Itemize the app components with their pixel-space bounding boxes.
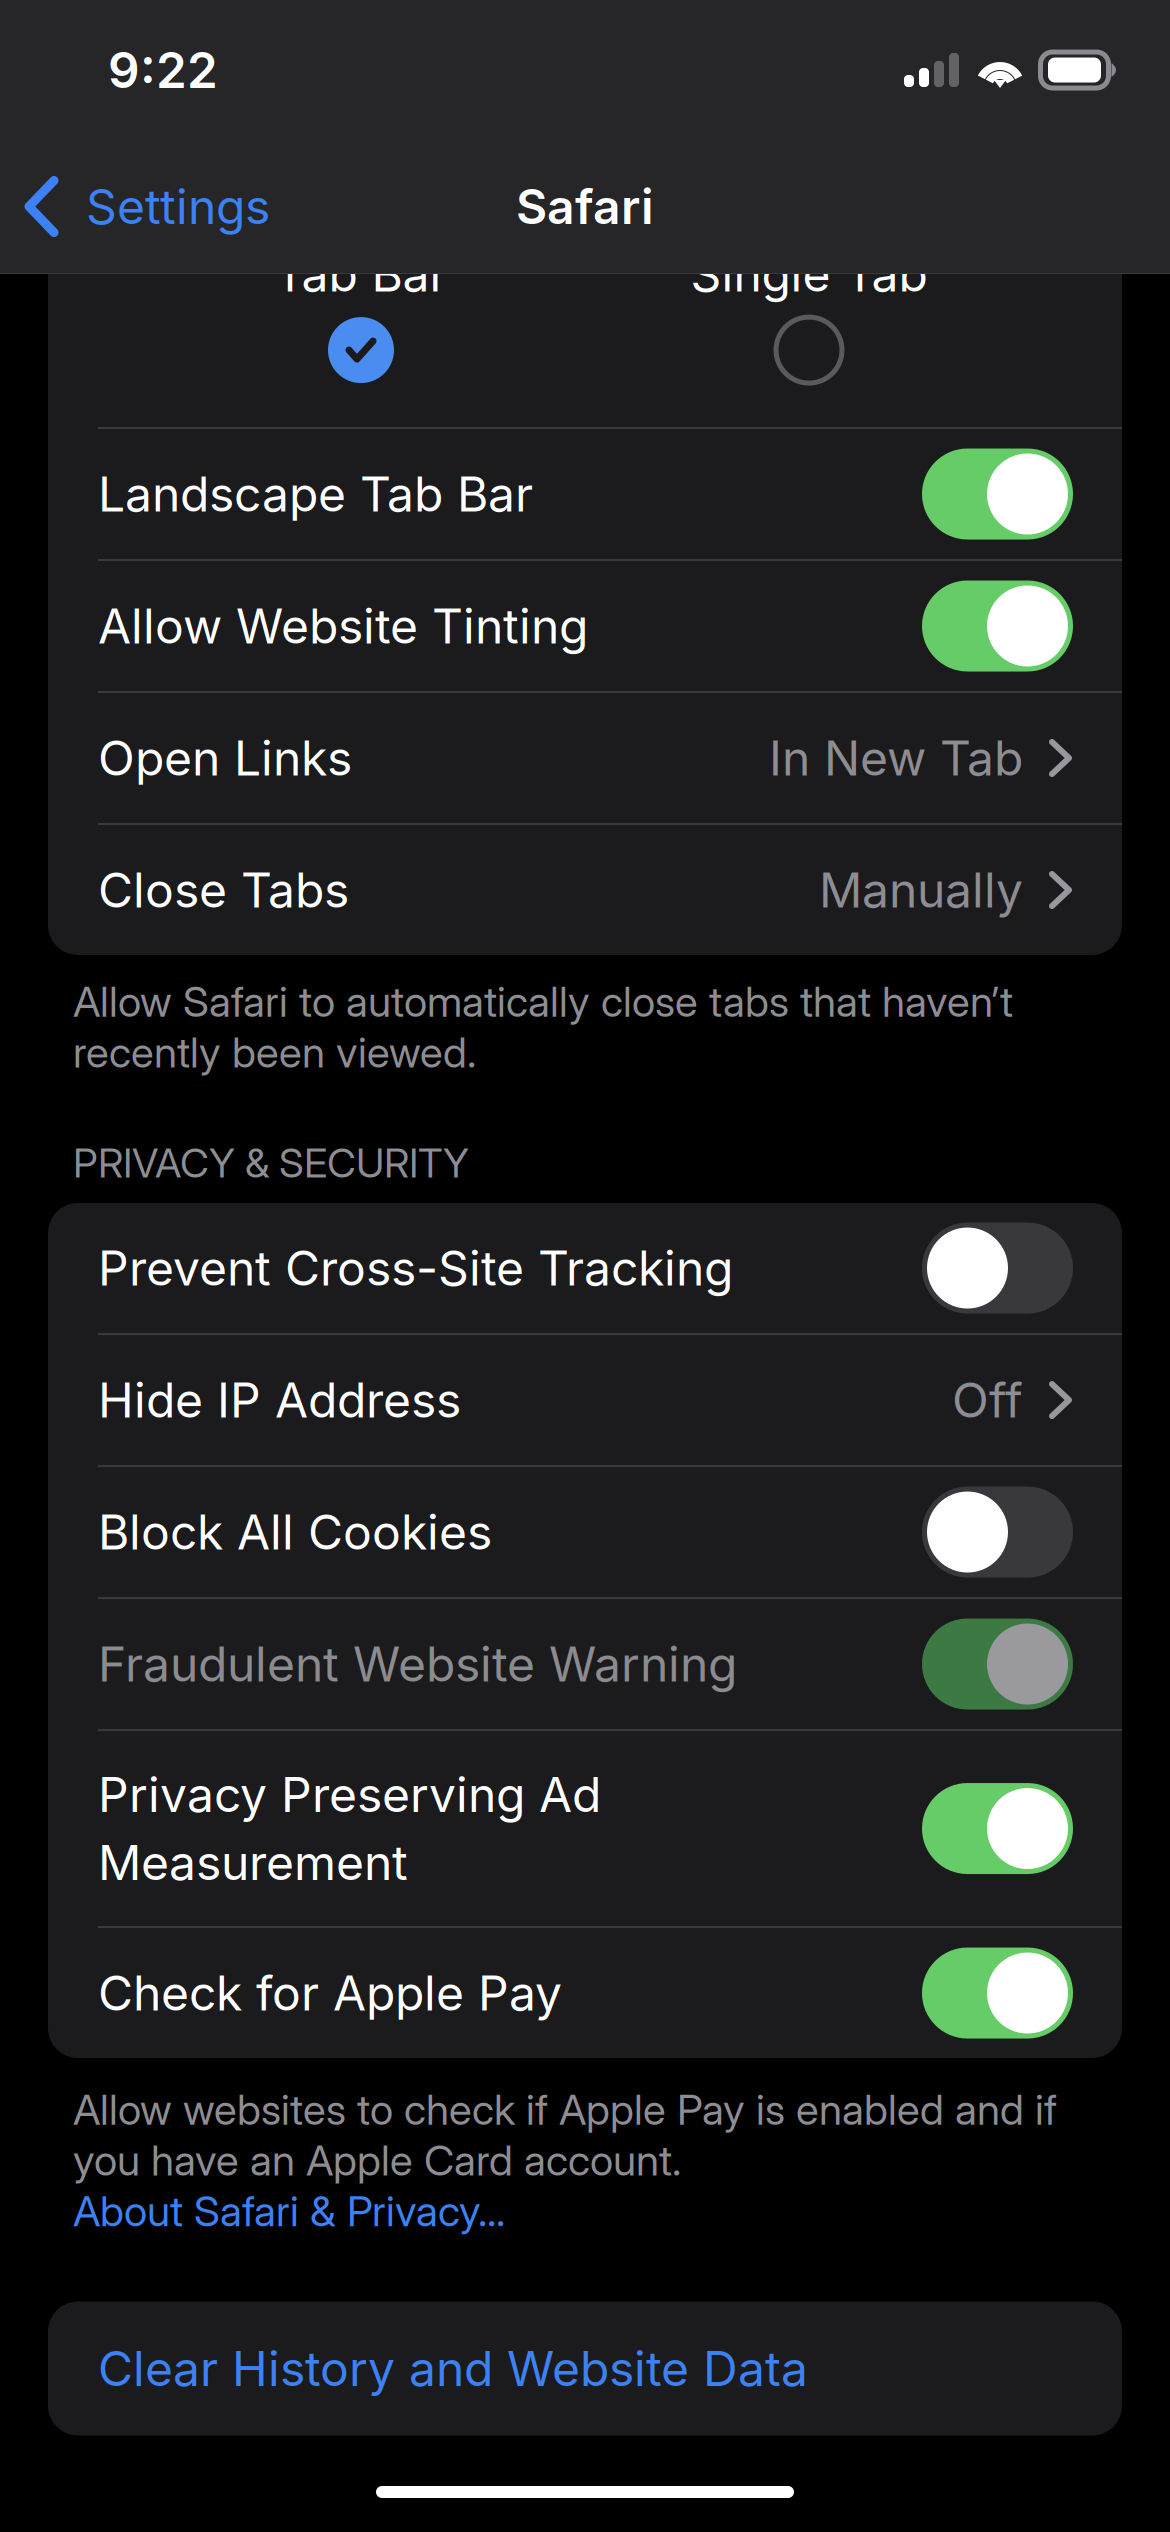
button[interactable]: Block All Cookies [48,1467,1122,1597]
staticText: Open Links [98,729,352,787]
button[interactable]: Allow Website Tinting [48,561,1122,691]
button[interactable]: Landscape Tab Bar [48,429,1122,559]
staticText: Check for Apple Pay [98,1964,562,2022]
staticText: Measurement [98,1833,408,1892]
button[interactable]: Open Links [48,693,1122,823]
staticText: PRIVACY & SECURITY [73,1139,469,1187]
staticText: Hide IP Address [98,1371,461,1429]
staticText: Settings [86,177,270,236]
button[interactable]: Single Tab [585,205,1033,427]
button[interactable]: Close Tabs [48,825,1122,955]
button[interactable]: Privacy Preserving Ad [48,1731,1122,1926]
staticText: Privacy Preserving Ad [98,1765,601,1824]
staticText: you have an Apple Card account. [73,2135,681,2186]
staticText: Tab Bar [274,245,447,303]
staticText: Allow Safari to automatically close tabs… [73,976,1013,1027]
staticText: 9:22 [108,40,218,100]
staticText: Allow Website Tinting [98,597,588,655]
staticText: Allow websites to check if Apple Pay is … [73,2084,1057,2135]
staticText: recently been viewed. [73,1027,476,1078]
staticText: Single Tab [690,245,927,303]
staticText: Safari [516,177,654,236]
button[interactable]: About Safari & Privacy... [73,2186,505,2236]
staticText: Block All Cookies [98,1503,492,1561]
staticText: Landscape Tab Bar [98,465,533,523]
button[interactable]: Prevent Cross-Site Tracking [48,1203,1122,1333]
staticText: Off [952,1371,1023,1429]
staticText: Fraudulent Website Warning [98,1635,737,1693]
staticText: Manually [819,861,1023,919]
button[interactable]: Fraudulent Website Warning [48,1599,1122,1729]
staticText: Clear History and Website Data [98,2339,808,2398]
staticText: About Safari & Privacy... [73,2186,505,2236]
button[interactable]: Hide IP Address [48,1335,1122,1465]
staticText: Close Tabs [98,861,349,919]
button[interactable]: Check for Apple Pay [48,1928,1122,2058]
button[interactable]: Tab Bar [137,205,585,427]
staticText: In New Tab [769,729,1023,787]
button[interactable]: Settings [0,140,290,273]
button[interactable]: Clear History and Website Data [48,2301,1122,2435]
staticText: Prevent Cross-Site Tracking [98,1239,733,1297]
